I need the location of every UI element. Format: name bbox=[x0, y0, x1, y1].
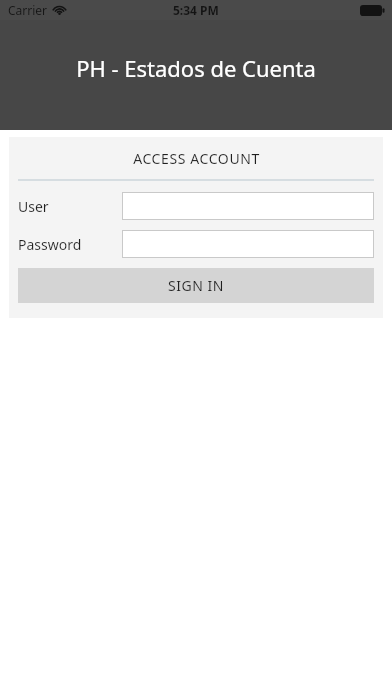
button[interactable]: User bbox=[122, 192, 374, 220]
button[interactable]: Password bbox=[122, 230, 374, 258]
staticText: Carrier bbox=[8, 2, 48, 18]
staticText: PH - Estados de Cuenta bbox=[76, 53, 316, 83]
button[interactable]: SIGN IN bbox=[18, 268, 374, 303]
staticText: ACCESS ACCOUNT bbox=[133, 149, 260, 168]
staticText: User bbox=[18, 197, 49, 216]
staticText: SIGN IN bbox=[168, 276, 224, 295]
staticText: Password bbox=[18, 235, 82, 254]
staticText: 5:34 PM bbox=[173, 2, 219, 18]
